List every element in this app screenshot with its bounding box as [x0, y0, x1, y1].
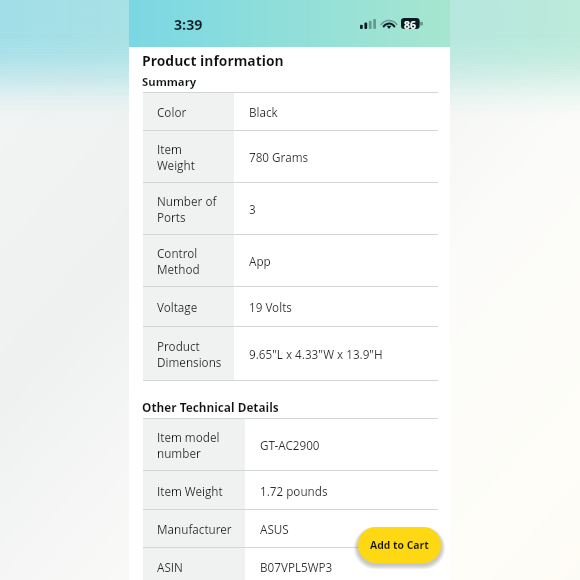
- staticText: Color: [157, 104, 187, 120]
- staticText: Control: [157, 245, 198, 261]
- button[interactable]: Number of: [143, 183, 438, 235]
- staticText: Voltage: [157, 299, 198, 315]
- button[interactable]: Item Weight: [143, 471, 438, 510]
- staticText: Item model: [157, 429, 220, 445]
- button[interactable]: Product: [143, 327, 438, 381]
- staticText: Number of: [157, 193, 217, 209]
- staticText: 86: [404, 18, 416, 29]
- staticText: Weight: [157, 157, 195, 173]
- staticText: Summary: [142, 74, 197, 89]
- staticText: 3: [249, 201, 256, 217]
- staticText: Product: [157, 338, 200, 354]
- button[interactable]: Add to Cart: [358, 527, 441, 563]
- staticText: Dimensions: [157, 354, 222, 370]
- staticText: App: [249, 253, 271, 269]
- staticText: Product information: [142, 51, 284, 70]
- staticText: 780 Grams: [249, 149, 309, 165]
- other: Mobile signal: [360, 19, 376, 29]
- button[interactable]: ASIN: [143, 548, 438, 580]
- staticText: Manufacturer: [157, 521, 232, 537]
- button[interactable]: Item: [143, 131, 438, 183]
- staticText: GT-AC2900: [260, 437, 320, 453]
- staticText: Method: [157, 261, 200, 277]
- staticText: Other Technical Details: [142, 399, 279, 415]
- staticText: Ports: [157, 209, 186, 225]
- staticText: number: [157, 445, 201, 461]
- staticText: 19 Volts: [249, 299, 292, 315]
- button[interactable]: Control: [143, 235, 438, 287]
- staticText: ASUS: [260, 521, 289, 537]
- other: Battery 86 percent: [401, 18, 423, 29]
- other: Wi-Fi: [382, 19, 396, 29]
- staticText: 9.65"L x 4.33"W x 13.9"H: [249, 346, 383, 362]
- button[interactable]: Voltage: [143, 287, 438, 327]
- button[interactable]: Item model: [143, 419, 438, 471]
- staticText: Add to Cart: [370, 538, 429, 552]
- staticText: ASIN: [157, 559, 183, 575]
- staticText: B07VPL5WP3: [260, 559, 333, 575]
- staticText: 1.72 pounds: [260, 483, 328, 499]
- staticText: Item: [157, 141, 182, 157]
- staticText: Black: [249, 104, 278, 120]
- staticText: Item Weight: [157, 483, 223, 499]
- staticText: 3:39: [174, 15, 203, 34]
- button[interactable]: Color: [143, 93, 438, 131]
- button[interactable]: Manufacturer: [143, 510, 438, 548]
